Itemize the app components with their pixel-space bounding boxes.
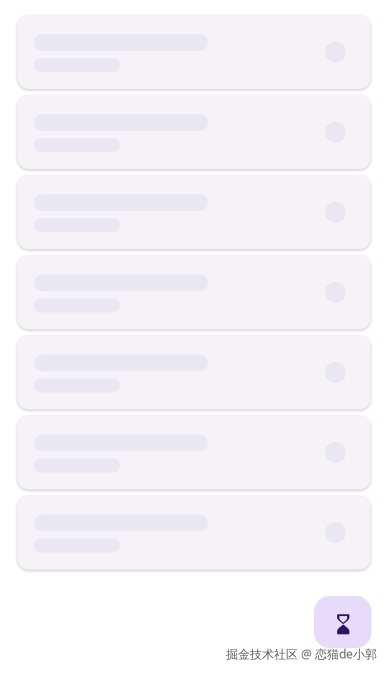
button[interactable]: Loading item xyxy=(17,175,370,249)
button[interactable]: Loading item xyxy=(17,95,370,169)
button[interactable]: Loading item xyxy=(17,15,370,89)
staticText: 掘金技术社区 @ 恋猫de小郭 xyxy=(226,646,377,662)
button[interactable]: Loading item xyxy=(17,415,370,489)
button[interactable]: Loading item xyxy=(17,496,370,570)
button[interactable]: Loading item xyxy=(17,335,370,409)
button[interactable]: Loading item xyxy=(17,255,370,329)
button[interactable]: Pending xyxy=(314,596,371,648)
